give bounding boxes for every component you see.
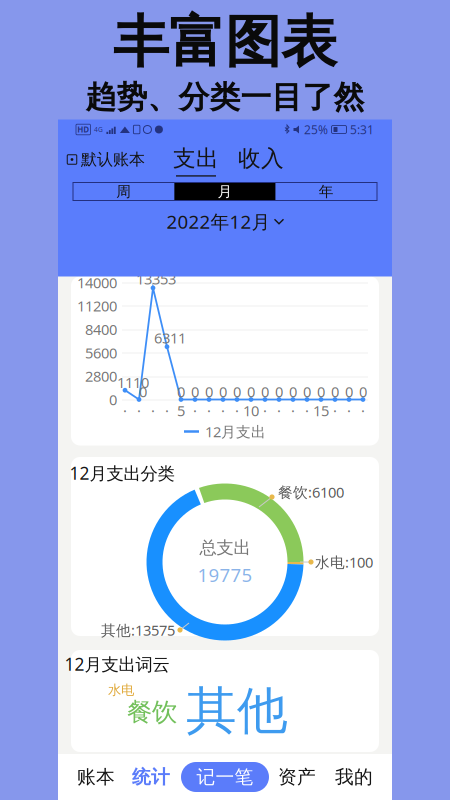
staticText: 1110 bbox=[117, 372, 149, 392]
staticText: 0 bbox=[247, 382, 255, 401]
staticText: 11200 bbox=[77, 296, 117, 316]
button[interactable]: 月 bbox=[174, 182, 276, 200]
staticText: · bbox=[291, 401, 295, 420]
staticText: 水电:100 bbox=[315, 552, 373, 572]
staticText: 0 bbox=[205, 382, 213, 401]
button[interactable]: 我的 bbox=[329, 754, 379, 800]
staticText: 2800 bbox=[85, 366, 117, 386]
staticText: 5:31 bbox=[350, 121, 374, 137]
staticText: · bbox=[333, 401, 337, 420]
staticText: · bbox=[347, 401, 351, 420]
staticText: 记一笔 bbox=[196, 765, 253, 788]
staticText: 5 bbox=[177, 401, 185, 420]
staticText: 25% bbox=[304, 121, 328, 137]
staticText: HD bbox=[77, 124, 89, 135]
staticText: 0 bbox=[359, 382, 367, 401]
button[interactable]: 2022年12月 bbox=[160, 204, 289, 239]
staticText: 12月支出分类 bbox=[69, 461, 174, 484]
button[interactable]: 周 bbox=[73, 182, 174, 200]
staticText: 12月支出 bbox=[205, 422, 266, 441]
staticText: 其他 bbox=[186, 680, 288, 742]
staticText: 13353 bbox=[136, 269, 176, 289]
staticText: 总支出 bbox=[199, 537, 250, 558]
staticText: · bbox=[361, 401, 365, 420]
staticText: 19775 bbox=[197, 562, 252, 587]
staticText: 12月支出词云 bbox=[64, 652, 169, 675]
staticText: 0 bbox=[345, 382, 353, 401]
staticText: 我的 bbox=[335, 765, 373, 788]
staticText: 6311 bbox=[154, 328, 186, 347]
staticText: 支出 bbox=[173, 144, 219, 172]
button[interactable]: 账本 bbox=[71, 754, 121, 800]
button[interactable]: 收入 bbox=[235, 142, 287, 175]
staticText: · bbox=[137, 401, 141, 420]
button[interactable]: 年 bbox=[276, 182, 377, 200]
staticText: 年 bbox=[319, 182, 334, 200]
staticText: 0 bbox=[177, 382, 185, 401]
staticText: 统计 bbox=[132, 765, 170, 788]
staticText: · bbox=[193, 401, 197, 420]
staticText: 餐饮:6100 bbox=[278, 482, 344, 502]
staticText: 0 bbox=[331, 382, 339, 401]
staticText: · bbox=[263, 401, 267, 420]
staticText: 月 bbox=[217, 182, 232, 200]
staticText: 0 bbox=[219, 382, 227, 401]
button[interactable]: 默认账本 bbox=[63, 145, 149, 174]
button[interactable]: 资产 bbox=[272, 754, 322, 800]
staticText: 10 bbox=[243, 401, 259, 420]
staticText: 收入 bbox=[238, 145, 284, 172]
button[interactable]: 支出 bbox=[170, 144, 222, 176]
staticText: 4G bbox=[94, 125, 103, 134]
staticText: · bbox=[277, 401, 281, 420]
staticText: · bbox=[151, 401, 155, 420]
staticText: 0 bbox=[317, 382, 325, 401]
staticText: · bbox=[235, 401, 239, 420]
staticText: · bbox=[305, 401, 309, 420]
staticText: 趋势、分类一目了然 bbox=[85, 79, 364, 116]
staticText: 账本 bbox=[77, 765, 115, 788]
staticText: 其他:13575 bbox=[101, 620, 175, 640]
staticText: 0 bbox=[191, 382, 199, 401]
button[interactable]: 记一笔 bbox=[181, 762, 269, 792]
staticText: 5600 bbox=[85, 343, 117, 362]
staticText: 0 bbox=[289, 382, 297, 401]
staticText: 餐饮 bbox=[127, 696, 177, 727]
staticText: 周 bbox=[116, 182, 131, 200]
staticText: 0 bbox=[109, 390, 117, 409]
staticText: · bbox=[165, 401, 169, 420]
staticText: · bbox=[123, 401, 127, 420]
staticText: 8400 bbox=[85, 320, 117, 339]
staticText: 资产 bbox=[278, 765, 316, 788]
staticText: 水电 bbox=[108, 682, 134, 698]
staticText: 丰富图表 bbox=[113, 8, 337, 77]
staticText: · bbox=[207, 401, 211, 420]
button[interactable]: 统计 bbox=[126, 754, 176, 800]
staticText: 0 bbox=[261, 382, 269, 401]
staticText: 2022年12月 bbox=[166, 209, 270, 234]
staticText: 0 bbox=[303, 382, 311, 401]
staticText: 默认账本 bbox=[81, 150, 145, 169]
staticText: 0 bbox=[233, 382, 241, 401]
staticText: 0 bbox=[139, 382, 147, 401]
staticText: 0 bbox=[275, 382, 283, 401]
staticText: 14000 bbox=[77, 273, 117, 292]
staticText: 15 bbox=[313, 401, 329, 420]
staticText: · bbox=[221, 401, 225, 420]
